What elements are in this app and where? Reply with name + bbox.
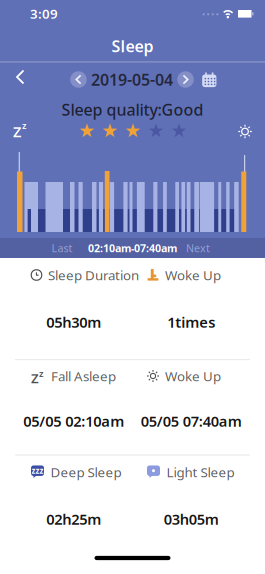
staticText: 1times [167,312,215,332]
button[interactable] [177,71,194,88]
staticText: Sleep Duration [48,266,139,284]
staticText: Sleep quality:Good [61,99,203,120]
staticText: z [39,367,44,380]
staticText: 02h25m [46,509,101,529]
button[interactable]: Last [42,238,82,258]
staticText: 02:10am-07:40am [88,241,177,255]
button[interactable] [202,72,217,87]
staticText: Last [51,241,72,255]
button[interactable] [70,71,87,88]
staticText: 05/05 07:40am [141,411,242,431]
staticText: Light Sleep [166,463,234,481]
staticText: 3:09 [30,5,58,22]
staticText: Deep Sleep [50,463,121,481]
staticText: Z [31,369,39,387]
staticText: Woke Up [165,266,221,284]
staticText: Sleep [111,35,153,57]
staticText: Z [13,122,21,141]
staticText: zzz [31,465,43,476]
staticText: z [22,119,27,132]
button[interactable]: Next [178,238,218,258]
staticText: 2019-05-04 [91,69,173,90]
staticText: Fall Asleep [51,367,116,385]
staticText: 03h05m [164,509,219,529]
staticText: Woke Up [165,367,221,385]
staticText: Next [186,241,210,255]
staticText: 05/05 02:10am [23,411,124,431]
staticText: 05h30m [46,312,101,332]
